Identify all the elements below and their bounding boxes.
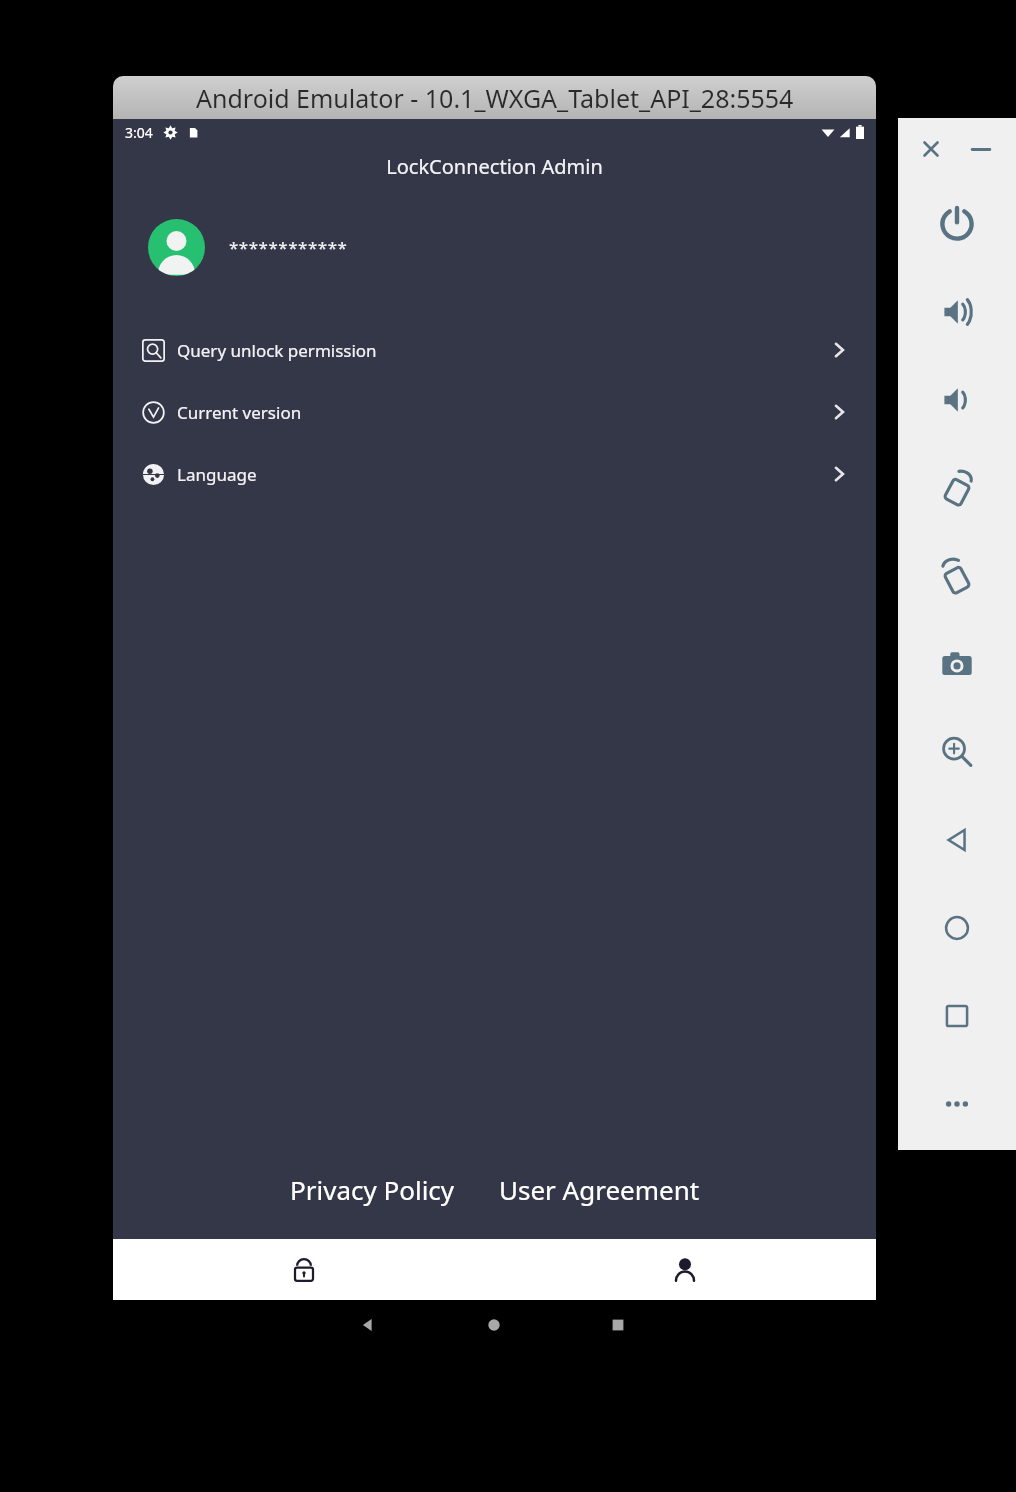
button[interactable]: Minimize [968,136,994,162]
staticText: Current version [177,401,302,424]
button[interactable]: Lock [113,1239,494,1300]
button[interactable]: Zoom [898,708,1016,796]
button[interactable]: Volume up [898,268,1016,356]
staticText: Query unlock permission [177,339,377,362]
button[interactable]: User Agreement [493,1166,706,1213]
button[interactable]: Overview [898,972,1016,1060]
button[interactable]: Volume down [898,356,1016,444]
button[interactable]: Back [353,1310,383,1340]
staticText: Language [177,463,257,486]
button[interactable]: Close [918,136,944,162]
button[interactable]: Language [113,443,876,505]
staticText: 3:04 [125,123,153,142]
button[interactable]: Current version [113,381,876,443]
staticText: User Agreement [499,1172,700,1207]
button[interactable]: Home [898,884,1016,972]
button[interactable]: Privacy Policy [284,1166,461,1213]
button[interactable]: Account [494,1239,876,1300]
staticText: Android Emulator - 10.1_WXGA_Tablet_API_… [196,81,794,115]
button[interactable]: Power [898,180,1016,268]
staticText: ************ [229,236,348,259]
button[interactable]: Home [479,1310,509,1340]
button[interactable]: Rotate right [898,532,1016,620]
button[interactable]: ************ [113,205,876,289]
button[interactable]: Recent apps [603,1310,633,1340]
button[interactable]: More [898,1060,1016,1148]
button[interactable]: Query unlock permission [113,319,876,381]
button[interactable]: Back [898,796,1016,884]
button[interactable]: Rotate left [898,444,1016,532]
staticText: Privacy Policy [290,1172,455,1207]
button[interactable]: Screenshot [898,620,1016,708]
staticText: LockConnection Admin [386,153,603,180]
